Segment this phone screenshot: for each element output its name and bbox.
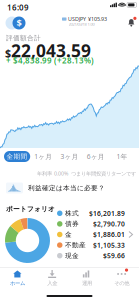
staticText: 年利率 0.00% つまり年間投資リターンです <box>37 170 136 177</box>
staticText: 利益確定は本当に必要？ <box>28 184 105 192</box>
button[interactable]: お知らせ <box>127 15 138 26</box>
staticText: + $4,838.99 (+28.13%) <box>6 55 94 66</box>
button[interactable]: 入金 <box>35 267 70 288</box>
staticText: $59.66 <box>103 251 125 260</box>
staticText: 6ヶ月 <box>87 152 105 161</box>
staticText: 1年 <box>116 152 127 161</box>
staticText: 22,043.59 <box>11 39 91 62</box>
staticText: その他 <box>114 280 129 287</box>
staticText: 運用 <box>82 280 92 287</box>
staticText: 不動産 <box>65 241 86 249</box>
staticText: 2021/03/18 1:00 <box>68 21 94 27</box>
button[interactable]: ホーム <box>0 267 35 288</box>
staticText: $16,201.89 <box>89 209 125 218</box>
button[interactable]: アカウント <box>5 16 26 30</box>
staticText: 1ヶ月 <box>34 152 52 161</box>
button[interactable]: その他 <box>104 267 139 288</box>
staticText: 株式 <box>65 209 79 217</box>
button[interactable]: 利益確定は本当に必要？ <box>0 181 139 195</box>
staticText: ポートフォリオ <box>6 205 55 213</box>
staticText: 債券 <box>65 220 79 228</box>
button[interactable]: 6ヶ月 <box>83 151 109 162</box>
staticText: 評価額合計 <box>6 34 41 42</box>
staticText: $ <box>5 46 11 60</box>
staticText: $2,790.70 <box>93 219 125 228</box>
button[interactable]: 全期間 <box>4 151 30 162</box>
staticText: $1,886.01 <box>93 230 125 239</box>
staticText: 16:09 <box>7 2 29 13</box>
button[interactable]: 3ヶ月 <box>56 151 83 162</box>
staticText: 入金 <box>47 280 57 287</box>
button[interactable]: 1年 <box>109 151 135 162</box>
button[interactable]: 1ヶ月 <box>30 151 56 162</box>
staticText: 3ヶ月 <box>60 152 78 161</box>
staticText: USDJPY ¥105.93 <box>68 15 107 23</box>
button[interactable]: 株式 <box>57 208 132 261</box>
staticText: 金 <box>65 230 72 239</box>
staticText: $ <box>16 17 21 29</box>
staticText: $1,105.33 <box>93 241 125 250</box>
button[interactable]: 運用 <box>69 267 104 288</box>
staticText: ホーム <box>10 280 25 287</box>
staticText: 全期間 <box>7 152 28 161</box>
staticText: 現金 <box>65 252 79 260</box>
